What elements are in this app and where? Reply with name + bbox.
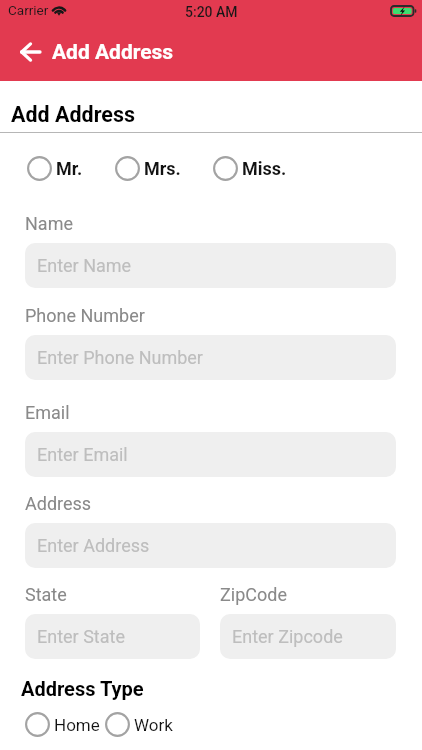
button[interactable]: Back [10, 32, 50, 72]
button[interactable]: Enter Email [25, 432, 396, 477]
staticText: Email [25, 402, 70, 423]
staticText: Miss. [242, 158, 287, 179]
staticText: Work [134, 715, 173, 735]
staticText: Enter State [37, 626, 125, 647]
staticText: Address [25, 493, 92, 514]
staticText: Add Address [11, 102, 136, 127]
staticText: Carrier [8, 2, 49, 18]
staticText: Enter Phone Number [37, 347, 203, 368]
staticText: Home [54, 715, 100, 735]
button[interactable]: Enter Phone Number [25, 335, 396, 380]
staticText: Enter Email [37, 444, 128, 465]
button[interactable]: Miss. [213, 156, 287, 181]
button[interactable]: Mrs. [115, 156, 181, 181]
button[interactable]: Enter Address [25, 523, 396, 568]
button[interactable]: Enter State [25, 614, 200, 659]
staticText: ZipCode [220, 584, 287, 605]
staticText: Phone Number [25, 305, 145, 326]
staticText: Mrs. [144, 158, 181, 179]
staticText: State [25, 584, 67, 605]
button[interactable]: Home [25, 712, 100, 737]
staticText: 5:20 AM [185, 4, 238, 20]
button[interactable]: Work [105, 712, 173, 737]
staticText: Mr. [56, 158, 83, 179]
staticText: Enter Zipcode [232, 626, 343, 647]
staticText: Address Type [21, 677, 144, 700]
staticText: Enter Name [37, 255, 132, 276]
button[interactable]: Enter Name [25, 243, 396, 288]
button[interactable]: Mr. [27, 156, 83, 181]
button[interactable]: Enter Zipcode [220, 614, 396, 659]
staticText: Name [25, 213, 73, 234]
staticText: Enter Address [37, 535, 150, 556]
staticText: Add Address [52, 40, 174, 65]
